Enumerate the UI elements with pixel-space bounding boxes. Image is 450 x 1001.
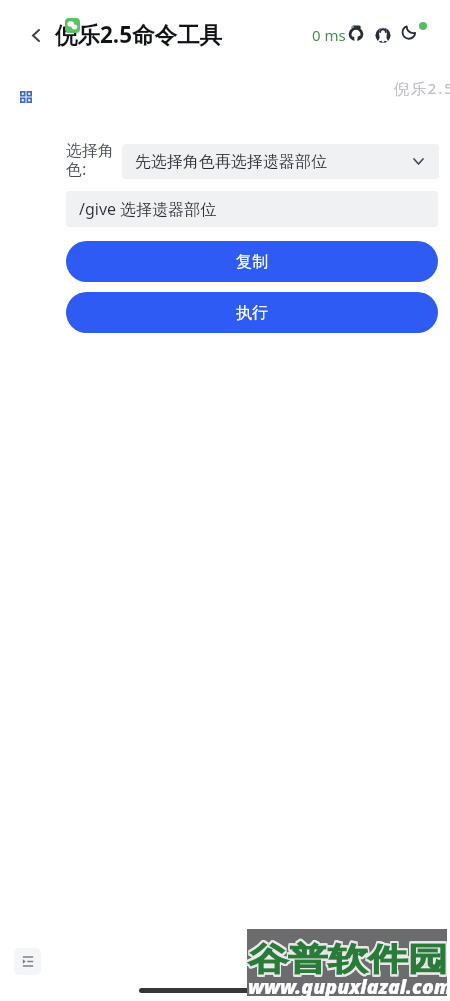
staticText: 谷普软件园: [247, 938, 447, 978]
staticText: 谷普软件园: [249, 939, 449, 979]
button[interactable]: 先选择角色再选择遗器部位: [122, 144, 439, 179]
staticText: 谷普软件园: [247, 939, 447, 979]
button[interactable]: Console: [14, 948, 41, 975]
button[interactable]: QQ: [371, 23, 395, 47]
staticText: 谷普软件园: [247, 938, 447, 977]
button[interactable]: Toggle dark mode: [397, 20, 421, 44]
staticText: 谷普软件园: [249, 938, 449, 978]
staticText: 倪乐2.5命令工具: [394, 78, 450, 98]
staticText: 复制: [236, 252, 268, 272]
staticText: 谷普软件园: [248, 939, 448, 979]
staticText: 谷普软件园: [247, 940, 447, 979]
staticText: 谷普软件园: [249, 941, 449, 980]
button[interactable]: GitHub: [344, 21, 368, 45]
staticText: 谷普软件园: [248, 938, 448, 978]
staticText: 选择角色:: [66, 141, 115, 180]
staticText: 倪乐2.5命令工具: [55, 19, 223, 50]
button[interactable]: Back: [18, 18, 53, 53]
staticText: 执行: [236, 303, 268, 323]
staticText: 谷普软件园: [247, 941, 447, 980]
button[interactable]: App menu: [12, 83, 40, 111]
staticText: 谷普软件园: [249, 938, 449, 977]
staticText: 谷普软件园: [248, 940, 448, 979]
staticText: 谷普软件园: [248, 938, 448, 977]
staticText: 谷普软件园: [249, 940, 449, 979]
button[interactable]: 执行: [66, 292, 438, 333]
staticText: www.gupuxlazal.com: [248, 973, 448, 1000]
button[interactable]: 复制: [66, 241, 438, 282]
staticText: 谷普软件园: [248, 941, 448, 980]
staticText: 先选择角色再选择遗器部位: [135, 152, 327, 172]
staticText: /give 选择遗器部位: [79, 198, 217, 220]
staticText: 0 ms: [312, 25, 346, 45]
